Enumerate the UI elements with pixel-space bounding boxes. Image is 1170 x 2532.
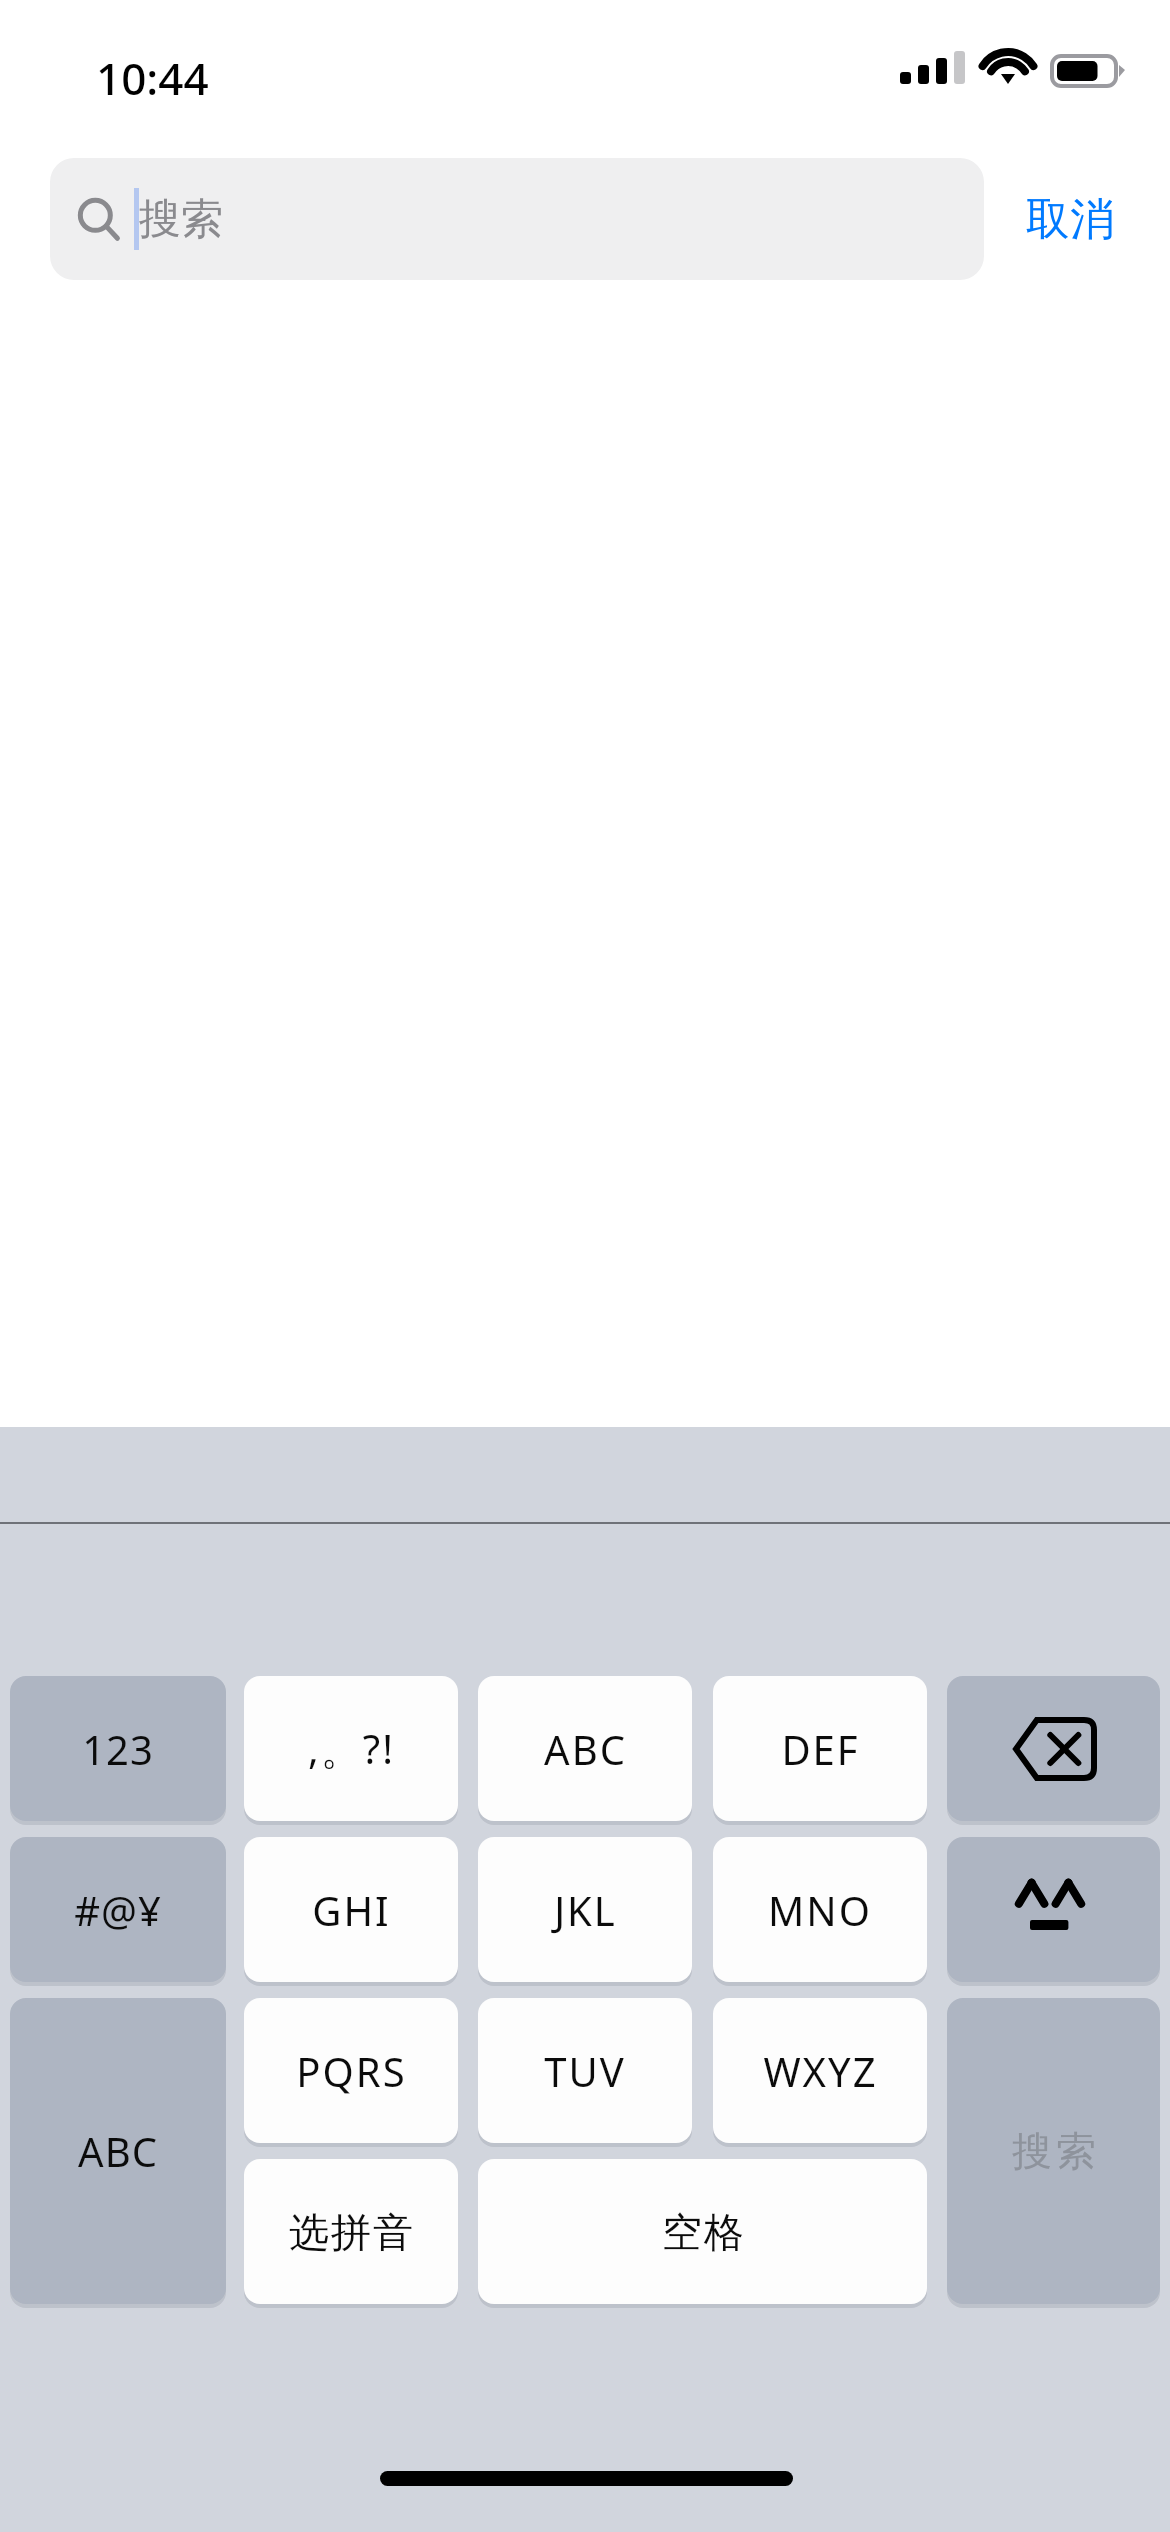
button[interactable]: #@¥ <box>10 1837 226 1982</box>
staticText: JKL <box>554 1883 617 1937</box>
staticText: 取消 <box>1026 192 1114 247</box>
staticText: ,。?! <box>308 1721 395 1776</box>
button[interactable]: PQRS <box>244 1998 458 2143</box>
staticText: 123 <box>82 1722 154 1776</box>
button[interactable]: Backspace <box>947 1676 1160 1821</box>
button[interactable]: GHI <box>244 1837 458 1982</box>
staticText: WXYZ <box>763 2044 878 2098</box>
staticText: TUV <box>544 2044 626 2098</box>
staticText: PQRS <box>296 2044 407 2098</box>
button[interactable]: JKL <box>478 1837 692 1982</box>
button[interactable]: ABC <box>478 1676 692 1821</box>
button[interactable]: ABC <box>10 1998 226 2304</box>
staticText: DEF <box>781 1722 860 1776</box>
staticText: 10:44 <box>96 48 209 108</box>
staticText: 选拼音 <box>288 2207 414 2257</box>
button[interactable]: WXYZ <box>713 1998 927 2143</box>
staticText: MNO <box>768 1883 872 1937</box>
button[interactable]: 空格 <box>478 2159 927 2304</box>
button[interactable]: DEF <box>713 1676 927 1821</box>
button[interactable]: 搜索 <box>50 158 984 280</box>
button[interactable]: 取消 <box>1000 158 1140 280</box>
staticText: ABC <box>544 1722 627 1776</box>
staticText: 空格 <box>661 2207 745 2257</box>
staticText: ABC <box>78 2124 158 2178</box>
staticText: 搜索 <box>1010 2126 1098 2176</box>
button[interactable]: TUV <box>478 1998 692 2143</box>
staticText: GHI <box>312 1883 391 1937</box>
staticText: #@¥ <box>74 1883 162 1937</box>
button[interactable]: ,。?! <box>244 1676 458 1821</box>
button[interactable]: Emoticons <box>947 1837 1160 1982</box>
button[interactable]: 123 <box>10 1676 226 1821</box>
button[interactable]: 选拼音 <box>244 2159 458 2304</box>
button[interactable]: MNO <box>713 1837 927 1982</box>
button[interactable]: 搜索 <box>947 1998 1160 2304</box>
staticText: 搜索 <box>139 193 223 246</box>
